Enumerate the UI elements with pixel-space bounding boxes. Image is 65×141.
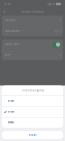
button[interactable]: Haptika klávesnice — [2, 26, 63, 36]
staticText: Střední — [8, 110, 15, 113]
button[interactable]: Back — [1, 8, 8, 15]
staticText: Vibrace — [4, 54, 10, 56]
staticText: Intenzita haptiky — [21, 89, 43, 92]
staticText: Zvuk a vibrace — [21, 10, 44, 13]
staticText: Nízká — [8, 100, 14, 102]
button[interactable]: Nízká — [2, 96, 63, 106]
button[interactable]: Zrušit — [2, 131, 63, 139]
staticText: Zvuk tlačítek — [4, 19, 15, 22]
staticText: 9:41 — [4, 2, 10, 6]
staticText: Upozornit vibrací — [4, 43, 18, 46]
staticText: Haptika klávesnice — [4, 30, 19, 32]
staticText: Vždy — [54, 30, 58, 32]
button[interactable]: Vysoká — [2, 117, 63, 128]
button[interactable]: Střední — [2, 107, 63, 117]
button[interactable]: Upozornit vibrací — [2, 39, 63, 50]
staticText: Vysoká — [8, 121, 14, 124]
staticText: Zrušit — [28, 133, 36, 137]
